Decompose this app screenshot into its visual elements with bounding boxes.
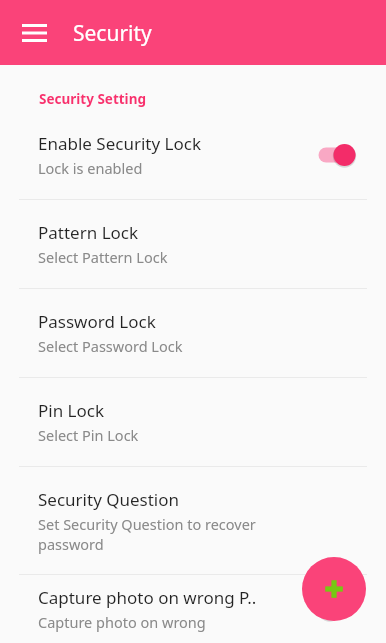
button[interactable]: Capture photo on wrong P.. (0, 575, 386, 643)
staticText: Enable Security Lock (38, 132, 201, 155)
button[interactable]: Password Lock (0, 289, 386, 377)
staticText: Security Setting (39, 90, 146, 108)
button[interactable]: Enable Security Lock (0, 111, 386, 199)
staticText: Pattern Lock (38, 221, 139, 244)
staticText: Capture photo on wrong (38, 612, 206, 632)
button[interactable]: Open navigation menu (10, 9, 58, 57)
button[interactable]: Toggle off (312, 592, 362, 626)
staticText: Lock is enabled (38, 158, 143, 178)
staticText: Select Pin Lock (38, 425, 139, 445)
staticText: Set Security Question to recover passwor… (38, 514, 291, 554)
button[interactable]: Pattern Lock (0, 200, 386, 288)
staticText: Select Password Lock (38, 336, 183, 356)
staticText: Password Lock (38, 310, 156, 333)
staticText: Select Pattern Lock (38, 247, 168, 267)
button[interactable]: Security Question (0, 467, 386, 574)
staticText: Security Question (38, 488, 180, 511)
button[interactable]: Toggle on (312, 138, 362, 172)
staticText: Security (73, 19, 152, 48)
button[interactable]: Pin Lock (0, 378, 386, 466)
staticText: Capture photo on wrong P.. (38, 586, 257, 609)
staticText: Pin Lock (38, 399, 105, 422)
button[interactable]: Add (302, 557, 366, 621)
